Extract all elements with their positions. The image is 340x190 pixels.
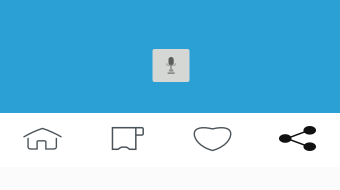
button[interactable]: Home: [0, 113, 85, 167]
button[interactable]: Favorites: [170, 113, 255, 167]
button[interactable]: Bookmarks: [85, 113, 170, 167]
button[interactable]: Share: [255, 113, 340, 167]
button[interactable]: Microphone: [152, 49, 189, 82]
